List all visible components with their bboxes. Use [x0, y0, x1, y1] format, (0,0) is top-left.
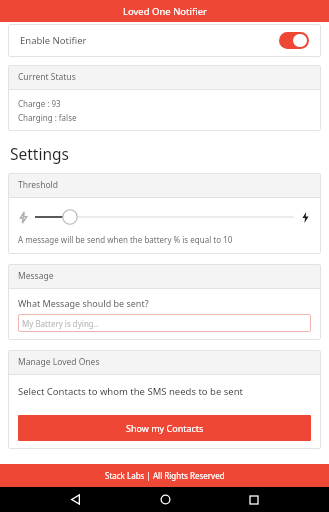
staticText: What Message should be sent? — [18, 297, 149, 309]
staticText: Loved One Notifier — [123, 5, 207, 18]
staticText: My Battery is dying.. — [22, 318, 99, 329]
button[interactable]: Home — [150, 487, 180, 512]
button[interactable]: Recent apps — [239, 487, 269, 512]
staticText: Select Contacts to whom the SMS needs to… — [18, 385, 243, 398]
staticText: Charge : 93 — [18, 98, 61, 109]
staticText: Settings — [10, 143, 69, 164]
button[interactable] — [35, 207, 294, 227]
button[interactable]: My Battery is dying.. — [18, 314, 311, 332]
staticText: Current Status — [18, 71, 76, 83]
staticText: Message — [18, 270, 54, 282]
staticText: A message will be send when the battery … — [18, 234, 233, 245]
staticText: Manage Loved Ones — [18, 356, 100, 368]
staticText: Charging : false — [18, 112, 77, 123]
staticText: Enable Notifier — [20, 34, 279, 47]
staticText: Show my Contacts — [126, 422, 204, 434]
button[interactable]: Back — [60, 487, 90, 512]
staticText: Stack Labs | All Rights Reserved — [105, 470, 225, 481]
button[interactable]: Enable Notifier — [8, 24, 321, 57]
staticText: Threshold — [18, 179, 59, 191]
button[interactable]: Enable Notifier toggle — [279, 32, 309, 49]
button[interactable]: Show my Contacts — [18, 415, 311, 441]
